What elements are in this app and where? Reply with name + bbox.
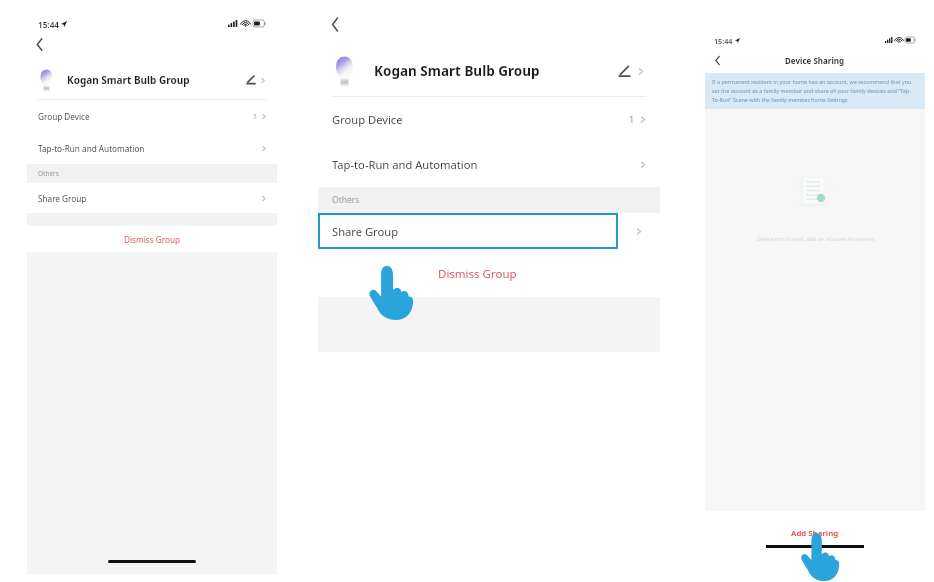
staticText: Others [38,169,59,178]
staticText: Others [332,194,360,206]
staticText: 1 [253,112,257,121]
staticText: 15:44 [38,19,59,28]
button[interactable]: Back [35,37,44,52]
button[interactable]: Share Group [318,213,660,249]
staticText: Tap-to-Run and Automation [38,143,145,154]
staticText: Group Device [38,111,90,122]
button[interactable]: Tap-to-Run and Automation [27,132,277,164]
button[interactable]: Share Group [27,183,277,213]
button[interactable]: Kogan Smart Bulb Group [318,46,660,96]
staticText: Device Sharing [785,55,845,66]
button[interactable]: Kogan Smart Bulb Group [27,61,277,99]
button[interactable]: Group Device [27,100,277,132]
button[interactable]: Back [330,16,340,33]
button[interactable]: Dismiss Group [438,266,517,282]
staticText: Tap-to-Run and Automation [332,157,478,172]
button[interactable]: Tap-to-Run and Automation [318,142,660,187]
staticText: If a permanent resident in your home has… [712,78,918,104]
staticText: Share Group [38,193,87,204]
staticText: 1 [629,113,635,126]
staticText: Share Group [332,224,399,239]
button[interactable]: Dismiss Group [124,234,180,245]
staticText: 15:44 [714,36,733,44]
staticText: Kogan Smart Bulb Group [374,62,540,80]
staticText: Device not shared, add an account to sha… [756,235,875,243]
button[interactable]: Group Device [318,97,660,142]
staticText: Group Device [332,112,403,127]
button[interactable]: Back [714,55,721,66]
staticText: Kogan Smart Bulb Group [67,73,190,87]
button[interactable]: Add Sharing [791,528,839,539]
